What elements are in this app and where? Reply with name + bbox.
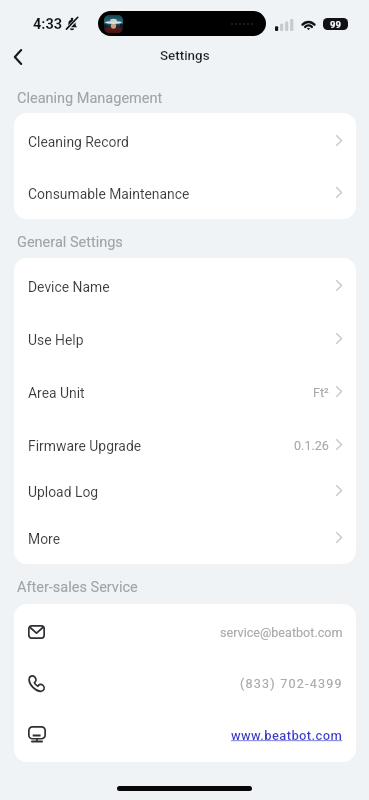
staticText: 4:33 (33, 16, 63, 33)
staticText: 0.1.26 (294, 438, 329, 453)
button[interactable]: Consumable Maintenance (14, 166, 356, 219)
button[interactable]: Cleaning Record (14, 113, 356, 168)
staticText: Consumable Maintenance (28, 186, 190, 202)
other: Phone (28, 674, 46, 692)
staticText: Cleaning Management (17, 90, 163, 107)
button[interactable]: Upload Log (14, 464, 356, 517)
staticText: 99 (330, 19, 341, 30)
staticText: After-sales Service (17, 579, 138, 596)
button[interactable]: Firmware Upgrade (14, 418, 356, 471)
staticText: service@beatbot.com (220, 625, 343, 640)
staticText: Device Name (28, 279, 110, 295)
staticText: Ft² (313, 385, 329, 400)
button[interactable]: Back (2, 41, 33, 72)
other: Email (28, 625, 45, 639)
button[interactable]: Device Name (14, 258, 356, 313)
button[interactable]: Use Help (14, 312, 356, 365)
button[interactable]: Phone (14, 656, 356, 709)
staticText: (833) 702-4399 (240, 676, 343, 691)
staticText: Upload Log (28, 484, 99, 500)
button[interactable]: Email (14, 604, 356, 659)
staticText: www.beatbot.com (231, 728, 343, 743)
staticText: General Settings (17, 234, 123, 251)
staticText: Cleaning Record (28, 134, 129, 150)
button[interactable]: More (14, 511, 356, 564)
other: Website (28, 726, 46, 743)
button[interactable]: Website (14, 708, 356, 761)
button[interactable]: Area Unit (14, 365, 356, 418)
staticText: Area Unit (28, 385, 85, 401)
staticText: Use Help (28, 332, 84, 348)
staticText: More (28, 531, 60, 547)
staticText: Settings (160, 48, 210, 64)
staticText: Firmware Upgrade (28, 438, 142, 454)
